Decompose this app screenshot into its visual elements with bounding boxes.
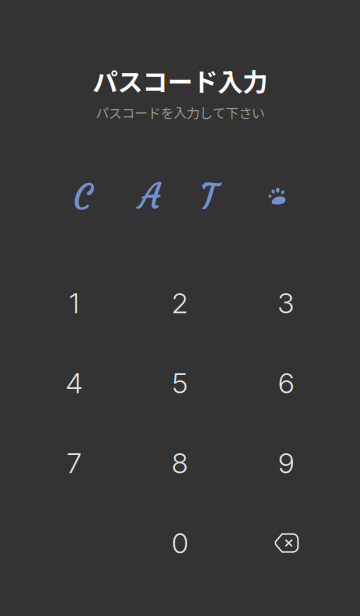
button[interactable]: 3 — [233, 263, 339, 343]
staticText: 3 — [277, 286, 294, 320]
staticText: 9 — [278, 446, 294, 480]
staticText: C — [73, 176, 92, 219]
staticText: 0 — [171, 526, 188, 560]
staticText: T — [200, 175, 216, 219]
button[interactable]: 0 — [127, 503, 233, 583]
button[interactable]: Delete — [233, 503, 339, 583]
staticText: 4 — [65, 366, 82, 400]
staticText: 7 — [66, 446, 81, 480]
button[interactable]: 5 — [127, 343, 233, 423]
staticText: 8 — [171, 446, 188, 480]
staticText: 2 — [171, 286, 188, 320]
button[interactable]: 7 — [21, 423, 127, 503]
button[interactable]: 6 — [233, 343, 339, 423]
button[interactable]: 4 — [21, 343, 127, 423]
staticText: 6 — [278, 366, 294, 400]
button[interactable]: 1 — [21, 263, 127, 343]
staticText: 1 — [69, 286, 79, 320]
staticText: パスコード入力 — [92, 62, 267, 99]
button[interactable]: 2 — [127, 263, 233, 343]
button[interactable]: 9 — [233, 423, 339, 503]
staticText: パスコードを入力して下さい — [95, 103, 264, 122]
staticText: A — [139, 175, 160, 218]
staticText: 5 — [172, 366, 188, 400]
button[interactable]: 8 — [127, 423, 233, 503]
